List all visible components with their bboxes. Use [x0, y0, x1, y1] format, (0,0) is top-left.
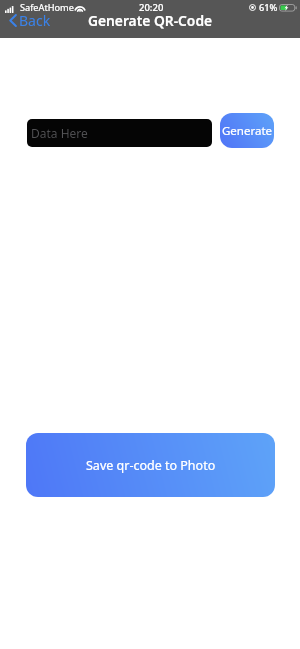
staticText: Data Here — [31, 125, 88, 141]
other: Wi-Fi — [74, 3, 86, 13]
staticText: 20:20 — [139, 1, 164, 14]
other: Location services — [249, 4, 256, 11]
staticText: 61% — [259, 1, 278, 14]
button[interactable]: Back — [4, 10, 56, 31]
button[interactable]: Generate — [220, 113, 274, 148]
other: Cellular signal — [5, 6, 14, 13]
button[interactable]: Save qr-code to Photo — [26, 433, 275, 497]
staticText: Generate QR-Code — [0, 11, 300, 30]
staticText: Save qr-code to Photo — [86, 457, 216, 474]
other: Battery charging 61 percent — [279, 4, 298, 12]
staticText: SafeAtHome — [20, 1, 74, 14]
staticText: Generate — [222, 123, 273, 139]
button[interactable]: Data Here — [27, 119, 212, 147]
staticText: Back — [19, 11, 51, 30]
